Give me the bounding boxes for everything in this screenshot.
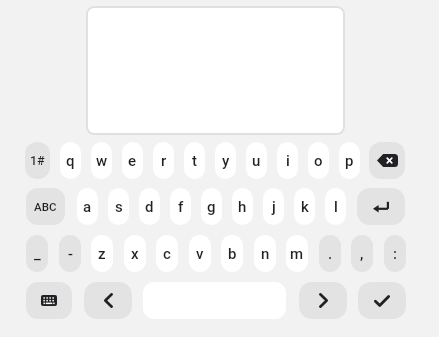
staticText: b bbox=[228, 245, 237, 263]
button[interactable]: k bbox=[294, 188, 315, 225]
button[interactable]: q bbox=[60, 142, 81, 179]
staticText: f bbox=[178, 198, 184, 216]
staticText: c bbox=[163, 245, 171, 263]
button[interactable]: r bbox=[153, 142, 174, 179]
button[interactable]: d bbox=[139, 188, 160, 225]
staticText: m bbox=[290, 245, 304, 263]
button[interactable]: i bbox=[277, 142, 298, 179]
button[interactable]: : bbox=[384, 235, 406, 272]
button[interactable]: . bbox=[319, 235, 341, 272]
button[interactable]: m bbox=[286, 235, 308, 272]
button[interactable]: , bbox=[351, 235, 373, 272]
staticText: d bbox=[145, 198, 154, 216]
button[interactable]: e bbox=[122, 142, 143, 179]
button[interactable]: s bbox=[108, 188, 129, 225]
button[interactable]: ABC bbox=[26, 188, 65, 225]
staticText: x bbox=[131, 245, 139, 263]
button[interactable]: z bbox=[91, 235, 113, 272]
staticText: k bbox=[301, 198, 309, 216]
staticText: v bbox=[196, 245, 204, 263]
staticText: e bbox=[128, 152, 137, 170]
staticText: u bbox=[252, 152, 261, 170]
button[interactable]: _ bbox=[26, 235, 48, 272]
staticText: s bbox=[115, 198, 123, 216]
staticText: r bbox=[161, 152, 167, 170]
staticText: j bbox=[272, 198, 276, 216]
staticText: h bbox=[238, 198, 247, 216]
staticText: l bbox=[334, 198, 338, 216]
button[interactable]: w bbox=[91, 142, 112, 179]
staticText: g bbox=[207, 198, 216, 216]
button[interactable]: j bbox=[263, 188, 284, 225]
button[interactable]: y bbox=[215, 142, 236, 179]
staticText: t bbox=[192, 152, 197, 170]
button[interactable]: f bbox=[170, 188, 191, 225]
button[interactable]: o bbox=[308, 142, 329, 179]
staticText: - bbox=[68, 245, 73, 263]
button[interactable]: t bbox=[184, 142, 205, 179]
button[interactable] bbox=[358, 282, 406, 319]
button[interactable]: l bbox=[325, 188, 346, 225]
staticText: y bbox=[222, 152, 230, 170]
staticText: p bbox=[345, 152, 354, 170]
staticText: . bbox=[328, 245, 333, 263]
staticText: ABC bbox=[34, 200, 57, 213]
button[interactable]: c bbox=[156, 235, 178, 272]
button[interactable]: g bbox=[201, 188, 222, 225]
staticText: n bbox=[261, 245, 270, 263]
button[interactable]: h bbox=[232, 188, 253, 225]
staticText: 1# bbox=[30, 153, 45, 168]
staticText: i bbox=[286, 152, 290, 170]
button[interactable]: 1# bbox=[25, 142, 50, 179]
staticText: a bbox=[83, 198, 92, 216]
staticText: _ bbox=[34, 245, 41, 263]
staticText: o bbox=[314, 152, 323, 170]
button[interactable] bbox=[86, 6, 345, 135]
button[interactable] bbox=[26, 282, 72, 319]
button[interactable] bbox=[369, 142, 405, 179]
button[interactable]: b bbox=[221, 235, 243, 272]
staticText: w bbox=[96, 152, 108, 170]
button[interactable]: u bbox=[246, 142, 267, 179]
staticText: z bbox=[98, 245, 106, 263]
button[interactable]: x bbox=[124, 235, 146, 272]
button[interactable] bbox=[299, 282, 347, 319]
button[interactable] bbox=[357, 188, 405, 225]
button[interactable]: n bbox=[254, 235, 276, 272]
button[interactable] bbox=[84, 282, 132, 319]
staticText: q bbox=[66, 152, 75, 170]
staticText: , bbox=[360, 245, 364, 263]
button[interactable]: - bbox=[59, 235, 81, 272]
button[interactable]: v bbox=[189, 235, 211, 272]
staticText: : bbox=[393, 245, 397, 263]
button[interactable]: p bbox=[339, 142, 360, 179]
button[interactable]: a bbox=[77, 188, 98, 225]
